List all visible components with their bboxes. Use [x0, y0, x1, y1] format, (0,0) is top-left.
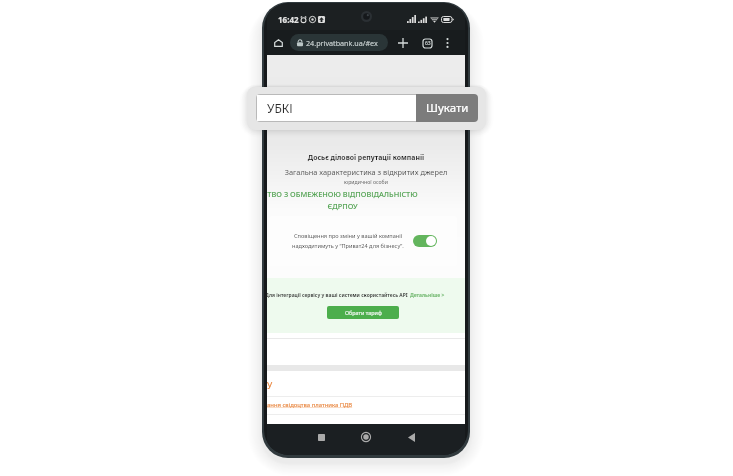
button[interactable]: New tab: [396, 36, 410, 50]
staticText: юридичної особи: [267, 178, 465, 185]
staticText: 63: [425, 40, 431, 47]
button[interactable]: Home: [269, 34, 287, 52]
staticText: Обрати тариф: [345, 309, 382, 316]
button[interactable]: Шукати: [416, 94, 478, 122]
staticText: 24.privatbank.ua/#ex: [306, 38, 378, 48]
staticText: 16:42: [278, 14, 299, 25]
button[interactable]: More options: [441, 36, 454, 49]
staticText: УБКІ: [267, 100, 293, 116]
button[interactable]: УБКІ: [256, 94, 416, 122]
staticText: надходитимуть у “Приват24 для бізнесу”.: [292, 242, 404, 250]
button[interactable]: Notifications toggle: [413, 235, 437, 247]
staticText: Загальна характеристика з відкритих джер…: [267, 167, 465, 177]
button[interactable]: Tabs: [420, 36, 434, 50]
button[interactable]: Recents: [310, 426, 332, 448]
staticText: Досьє ділової репутації компанії: [267, 153, 465, 162]
staticText: ЄДРПОУ: [327, 201, 358, 211]
button[interactable]: Home: [355, 426, 377, 448]
staticText: Для інтеграції сервісу у ваші системи ск…: [265, 292, 408, 299]
button[interactable]: Обрати тариф: [327, 306, 399, 319]
button[interactable]: Back: [400, 426, 422, 448]
staticText: Шукати: [426, 100, 469, 116]
staticText: Сповіщення про зміни у вашій компанії: [294, 232, 403, 240]
staticText: У: [267, 380, 273, 392]
button[interactable]: 24.privatbank.ua/#ex: [290, 34, 388, 51]
staticText: ТВО З ОБМЕЖЕНОЮ ВІДПОВІДАЛЬНІСТЮ: [267, 189, 418, 199]
button[interactable]: Детальніше >: [410, 292, 445, 299]
button[interactable]: ання свідоцтва платника ПДВ: [267, 401, 353, 409]
